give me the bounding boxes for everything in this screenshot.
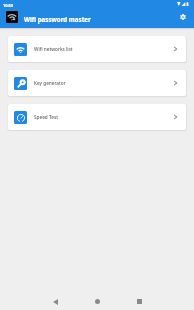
button[interactable]: Home xyxy=(87,293,108,310)
button[interactable]: Wifi networks list xyxy=(8,36,186,62)
button[interactable]: Settings xyxy=(176,11,190,23)
button[interactable]: Recents xyxy=(129,293,150,310)
staticText: Key generator xyxy=(34,80,66,86)
staticText: 10:50 xyxy=(3,3,13,8)
button[interactable]: Key generator xyxy=(8,70,186,96)
staticText: Wifi password master xyxy=(24,15,91,23)
staticText: Wifi networks list xyxy=(34,46,73,52)
button[interactable]: Back xyxy=(45,293,66,310)
staticText: Speed Test xyxy=(34,114,59,120)
button[interactable]: Speed Test xyxy=(8,104,186,130)
